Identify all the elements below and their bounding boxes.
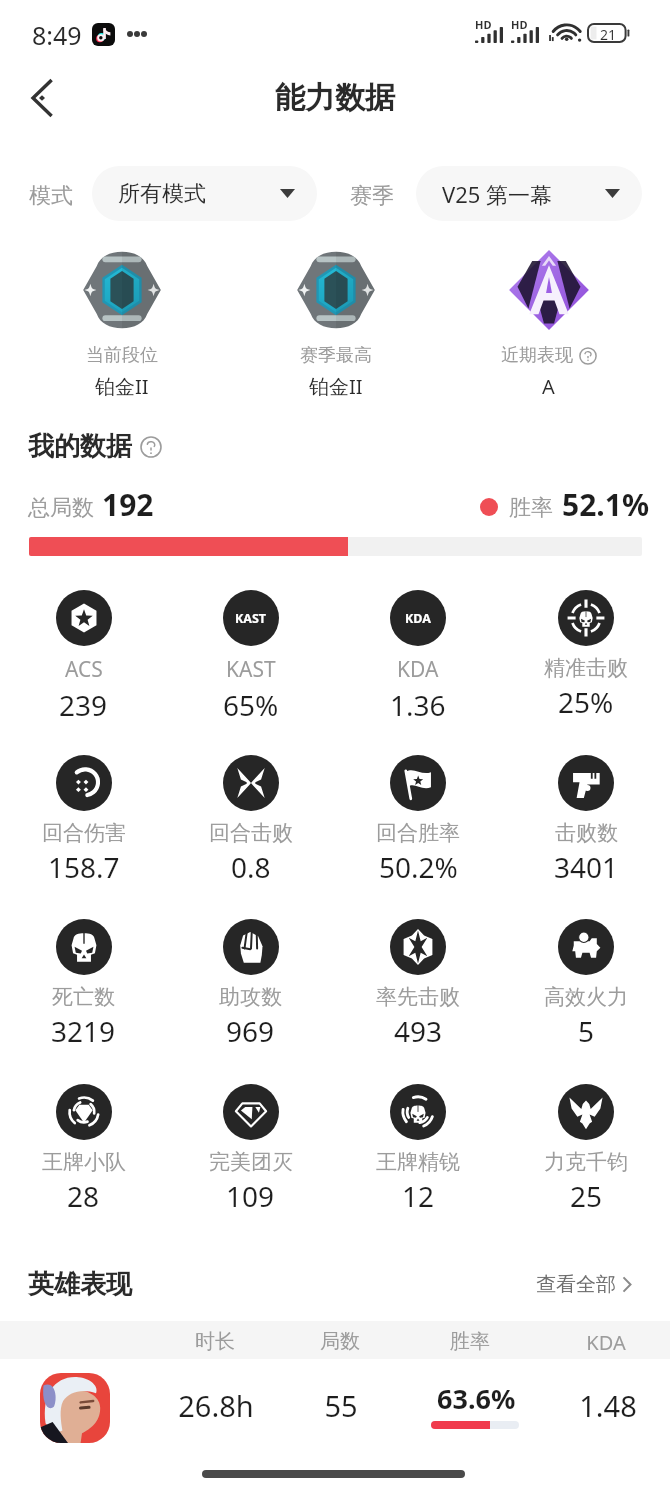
staticText: 21 bbox=[600, 25, 617, 44]
staticText: 所有模式 bbox=[118, 180, 206, 208]
staticText: 查看全部 bbox=[536, 1272, 616, 1297]
staticText: 能力数据 bbox=[275, 79, 395, 117]
button[interactable]: 赛季最高 bbox=[229, 248, 442, 400]
staticText: 力克千钧 bbox=[544, 1149, 628, 1175]
staticText: 3219 bbox=[51, 1012, 116, 1050]
staticText: 死亡数 bbox=[52, 984, 115, 1010]
staticText: 率先击败 bbox=[376, 984, 460, 1010]
staticText: 1.36 bbox=[390, 686, 446, 724]
button[interactable]: 高效火力 bbox=[502, 919, 670, 1050]
button[interactable]: 回合伤害 bbox=[0, 755, 167, 886]
staticText: 铂金II bbox=[309, 373, 363, 400]
staticText: 赛季最高 bbox=[300, 344, 372, 367]
staticText: 当前段位 bbox=[86, 344, 158, 367]
button[interactable]: 完美团灭 bbox=[167, 1084, 334, 1215]
staticText: 50.2% bbox=[379, 848, 458, 886]
staticText: 28 bbox=[67, 1177, 100, 1215]
staticText: 我的数据 bbox=[28, 430, 132, 463]
staticText: 英雄表现 bbox=[28, 1268, 132, 1301]
staticText: 1.48 bbox=[538, 1386, 670, 1425]
button[interactable] bbox=[0, 1359, 670, 1457]
staticText: 赛季 bbox=[350, 182, 394, 210]
staticText: 109 bbox=[226, 1177, 275, 1215]
staticText: 模式 bbox=[29, 182, 73, 210]
button[interactable]: 我的数据 bbox=[28, 430, 162, 463]
button[interactable]: 回合击败 bbox=[167, 755, 334, 886]
staticText: 王牌小队 bbox=[42, 1149, 126, 1175]
staticText: 25 bbox=[570, 1177, 603, 1215]
staticText: 时长 bbox=[155, 1329, 275, 1354]
staticText: 回合击败 bbox=[209, 820, 293, 846]
staticText: V25 第一幕 bbox=[442, 179, 553, 209]
staticText: 5 bbox=[578, 1012, 595, 1050]
staticText: 8:49 bbox=[32, 18, 82, 52]
button[interactable]: 所有模式 bbox=[92, 166, 317, 221]
button[interactable]: 率先击败 bbox=[334, 919, 502, 1050]
staticText: 3401 bbox=[554, 848, 619, 886]
staticText: 胜率 bbox=[410, 1329, 530, 1354]
button[interactable]: 英雄表现 bbox=[28, 1268, 132, 1301]
button[interactable]: 王牌精锐 bbox=[334, 1084, 502, 1215]
staticText: 63.6% bbox=[437, 1380, 516, 1417]
staticText: 12 bbox=[402, 1177, 435, 1215]
button[interactable]: 近期表现 bbox=[442, 248, 655, 400]
staticText: 铂金II bbox=[95, 373, 149, 400]
staticText: A bbox=[542, 373, 555, 400]
staticText: 精准击败 bbox=[544, 655, 628, 681]
staticText: KDA bbox=[397, 655, 439, 684]
staticText: 完美团灭 bbox=[209, 1149, 293, 1175]
staticText: 助攻数 bbox=[219, 984, 282, 1010]
staticText: 493 bbox=[394, 1012, 443, 1050]
button[interactable]: 击败数 bbox=[502, 755, 670, 886]
button[interactable]: 精准击败 bbox=[502, 590, 670, 721]
staticText: 55 bbox=[271, 1386, 411, 1425]
staticText: 192 bbox=[102, 484, 154, 525]
button[interactable]: 王牌小队 bbox=[0, 1084, 167, 1215]
staticText: KDA bbox=[405, 610, 431, 627]
staticText: 52.1% bbox=[562, 484, 649, 525]
staticText: 65% bbox=[223, 686, 279, 724]
staticText: KDA bbox=[546, 1329, 666, 1356]
staticText: 回合胜率 bbox=[376, 820, 460, 846]
staticText: 高效火力 bbox=[544, 984, 628, 1010]
button[interactable]: 死亡数 bbox=[0, 919, 167, 1050]
staticText: KAST bbox=[226, 655, 276, 684]
staticText: 239 bbox=[59, 686, 108, 724]
staticText: KAST bbox=[235, 610, 267, 627]
button[interactable]: 助攻数 bbox=[167, 919, 334, 1050]
staticText: 969 bbox=[226, 1012, 275, 1050]
button[interactable]: KDA bbox=[334, 590, 502, 724]
staticText: HD bbox=[511, 17, 528, 32]
staticText: 158.7 bbox=[48, 848, 120, 886]
staticText: 胜率 bbox=[509, 494, 553, 522]
staticText: 总局数 bbox=[28, 494, 94, 522]
staticText: 近期表现 bbox=[501, 344, 573, 367]
staticText: 局数 bbox=[280, 1329, 400, 1354]
staticText: 击败数 bbox=[555, 820, 618, 846]
staticText: 25% bbox=[558, 683, 614, 721]
button[interactable]: 力克千钧 bbox=[502, 1084, 670, 1215]
staticText: 0.8 bbox=[231, 848, 271, 886]
staticText: HD bbox=[475, 17, 492, 32]
staticText: ACS bbox=[65, 655, 103, 684]
staticText: 王牌精锐 bbox=[376, 1149, 460, 1175]
button[interactable]: 当前段位 bbox=[15, 248, 229, 400]
button[interactable]: Back bbox=[14, 70, 70, 126]
button[interactable]: KAST bbox=[167, 590, 334, 724]
staticText: 回合伤害 bbox=[42, 820, 126, 846]
button[interactable]: ACS bbox=[0, 590, 167, 724]
button[interactable]: V25 第一幕 bbox=[416, 166, 642, 221]
staticText: 26.8h bbox=[146, 1386, 286, 1425]
button[interactable]: 查看全部 bbox=[536, 1272, 632, 1297]
button[interactable]: 回合胜率 bbox=[334, 755, 502, 886]
